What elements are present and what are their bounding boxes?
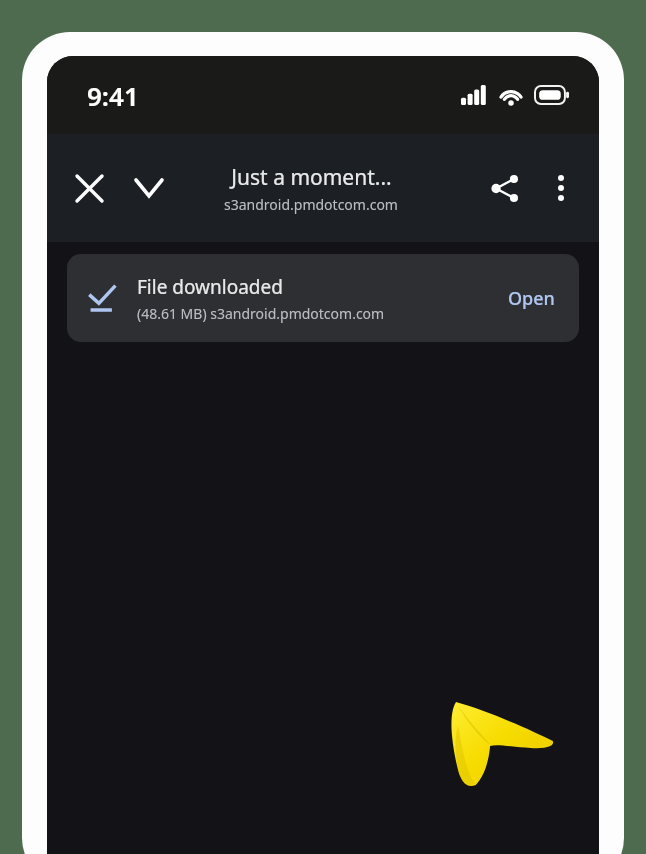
staticText: Just a moment... <box>231 163 392 192</box>
staticText: Open <box>508 286 555 311</box>
button[interactable]: Collapse <box>121 160 177 216</box>
staticText: s3android.pmdotcom.com <box>224 195 398 214</box>
staticText: 9:41 <box>87 78 139 113</box>
button[interactable]: Share <box>477 160 533 216</box>
button[interactable]: File downloaded <box>67 254 579 342</box>
button[interactable]: Open <box>492 278 571 319</box>
button[interactable]: Close <box>61 160 117 216</box>
button[interactable]: Just a moment... <box>224 163 398 214</box>
button[interactable]: More options <box>533 160 589 216</box>
staticText: File downloaded <box>137 274 283 300</box>
staticText: (48.61 MB) s3android.pmdotcom.com <box>137 304 385 323</box>
